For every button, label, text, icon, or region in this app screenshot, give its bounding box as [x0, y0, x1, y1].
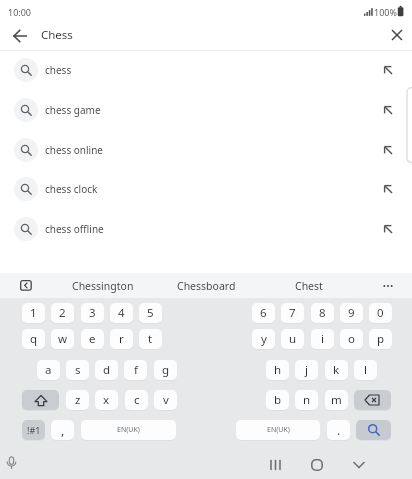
button[interactable]: v	[154, 390, 177, 410]
staticText: EN(UK)	[117, 425, 140, 435]
button[interactable]: x	[95, 390, 118, 410]
button[interactable]: u	[281, 329, 304, 349]
staticText: m	[331, 392, 342, 408]
button[interactable]: m	[325, 390, 348, 410]
staticText: u	[289, 331, 297, 347]
button[interactable]: chess clock	[0, 169, 412, 209]
staticText: r	[119, 331, 124, 347]
button[interactable]	[261, 452, 289, 478]
staticText: b	[274, 392, 282, 408]
button[interactable]: l	[354, 360, 377, 380]
staticText: chess game	[45, 103, 101, 117]
button[interactable]: n	[295, 390, 318, 410]
staticText: t	[148, 331, 153, 347]
staticText: a	[45, 362, 52, 378]
button[interactable]: s	[66, 360, 89, 380]
button[interactable]: chess game	[0, 90, 412, 130]
button[interactable]: 0	[369, 303, 392, 323]
button[interactable]: 3	[81, 303, 104, 323]
button[interactable]: h	[266, 360, 289, 380]
staticText: o	[348, 331, 355, 347]
button[interactable]: chess offline	[0, 209, 412, 249]
staticText: v	[163, 392, 169, 408]
button[interactable]: chess online	[0, 130, 412, 170]
button[interactable]	[345, 452, 373, 478]
staticText: 3	[89, 305, 96, 321]
button[interactable]: 8	[311, 303, 334, 323]
button[interactable]: 5	[139, 303, 162, 323]
staticText: Chess	[41, 27, 73, 43]
button[interactable]: ,	[51, 420, 74, 440]
staticText: j	[305, 362, 308, 378]
button[interactable]: a	[37, 360, 60, 380]
button[interactable]: q	[22, 329, 45, 349]
button[interactable]: b	[266, 390, 289, 410]
button[interactable]: i	[311, 329, 334, 349]
button[interactable]: d	[95, 360, 118, 380]
button[interactable]: z	[66, 390, 89, 410]
staticText: 100%	[374, 6, 397, 18]
staticText: g	[162, 362, 170, 378]
staticText: h	[274, 362, 282, 378]
button[interactable]: r	[110, 329, 133, 349]
button[interactable]: .	[327, 420, 350, 440]
button[interactable]: 7	[281, 303, 304, 323]
button[interactable]: Chessboard	[146, 273, 266, 298]
button[interactable]: p	[369, 329, 392, 349]
staticText: s	[75, 362, 81, 378]
button[interactable]	[384, 23, 410, 47]
staticText: y	[261, 331, 267, 347]
staticText: 0	[377, 305, 384, 321]
button[interactable]: o	[340, 329, 363, 349]
button[interactable]: !#1	[22, 420, 45, 440]
button[interactable]: EN(UK)	[81, 420, 176, 440]
button[interactable]	[376, 273, 400, 298]
button[interactable]: w	[51, 329, 74, 349]
button[interactable]: Chessington	[43, 273, 163, 298]
staticText: 5	[147, 305, 154, 321]
staticText: 4	[118, 305, 125, 321]
button[interactable]: 1	[22, 303, 45, 323]
staticText: 9	[348, 305, 355, 321]
button[interactable]: c	[125, 390, 148, 410]
button[interactable]: j	[295, 360, 318, 380]
staticText: l	[364, 362, 367, 378]
staticText: chess	[45, 63, 72, 77]
staticText: !#1	[27, 424, 41, 436]
button[interactable]	[22, 390, 59, 410]
staticText: 8	[319, 305, 326, 321]
staticText: i	[321, 331, 324, 347]
staticText: x	[103, 392, 110, 408]
staticText: Chest	[295, 279, 323, 293]
button[interactable]: y	[252, 329, 275, 349]
button[interactable]: EN(UK)	[236, 420, 320, 440]
button[interactable]: g	[154, 360, 177, 380]
button[interactable]	[14, 273, 38, 298]
staticText: Chessboard	[177, 279, 236, 293]
button[interactable]: chess	[0, 50, 412, 90]
staticText: 2	[59, 305, 66, 321]
button[interactable]: e	[81, 329, 104, 349]
button[interactable]	[303, 452, 331, 478]
staticText: EN(UK)	[267, 425, 290, 435]
button[interactable]: 2	[51, 303, 74, 323]
staticText: w	[58, 331, 68, 347]
button[interactable]: t	[139, 329, 162, 349]
button[interactable]: Chest	[249, 273, 369, 298]
button[interactable]: 6	[252, 303, 275, 323]
button[interactable]	[356, 420, 391, 440]
staticText: q	[30, 331, 38, 347]
staticText: chess offline	[45, 222, 104, 236]
staticText: chess clock	[45, 182, 98, 196]
button[interactable]: k	[325, 360, 348, 380]
button[interactable]: 9	[340, 303, 363, 323]
staticText: 7	[289, 305, 296, 321]
button[interactable]: 4	[110, 303, 133, 323]
button[interactable]: f	[124, 360, 147, 380]
button[interactable]	[354, 390, 391, 410]
staticText: n	[303, 392, 311, 408]
staticText: 10:00	[8, 6, 32, 18]
staticText: f	[134, 362, 138, 378]
staticText: Chessington	[72, 279, 134, 293]
button[interactable]	[6, 24, 34, 48]
